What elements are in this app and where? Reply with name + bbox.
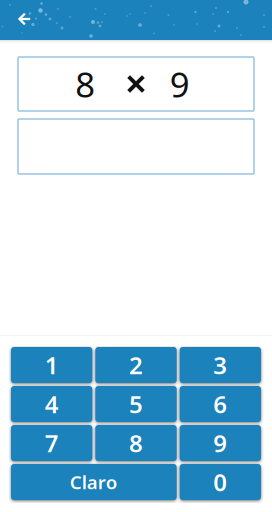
- button[interactable]: 2: [95, 347, 177, 383]
- button[interactable]: Claro: [11, 464, 177, 500]
- staticText: 0: [213, 466, 227, 498]
- button[interactable]: 4: [11, 386, 92, 422]
- staticText: 5: [129, 388, 143, 420]
- staticText: 9: [170, 61, 190, 107]
- staticText: 6: [213, 388, 227, 420]
- button[interactable]: 6: [180, 386, 261, 422]
- staticText: 1: [45, 349, 59, 381]
- button[interactable]: 3: [180, 347, 261, 383]
- staticText: 7: [45, 427, 59, 459]
- staticText: 3: [213, 349, 227, 381]
- staticText: 8: [75, 61, 95, 107]
- button[interactable]: 0: [180, 464, 261, 500]
- button[interactable]: 7: [11, 425, 92, 461]
- staticText: 9: [213, 427, 227, 459]
- staticText: 2: [129, 349, 143, 381]
- staticText: Claro: [70, 470, 118, 494]
- button[interactable]: 8: [95, 425, 177, 461]
- staticText: 4: [45, 388, 59, 420]
- button[interactable]: 5: [95, 386, 177, 422]
- button[interactable]: 1: [11, 347, 92, 383]
- button[interactable]: 9: [180, 425, 261, 461]
- button[interactable]: Back: [0, 0, 44, 40]
- staticText: 8: [129, 427, 143, 459]
